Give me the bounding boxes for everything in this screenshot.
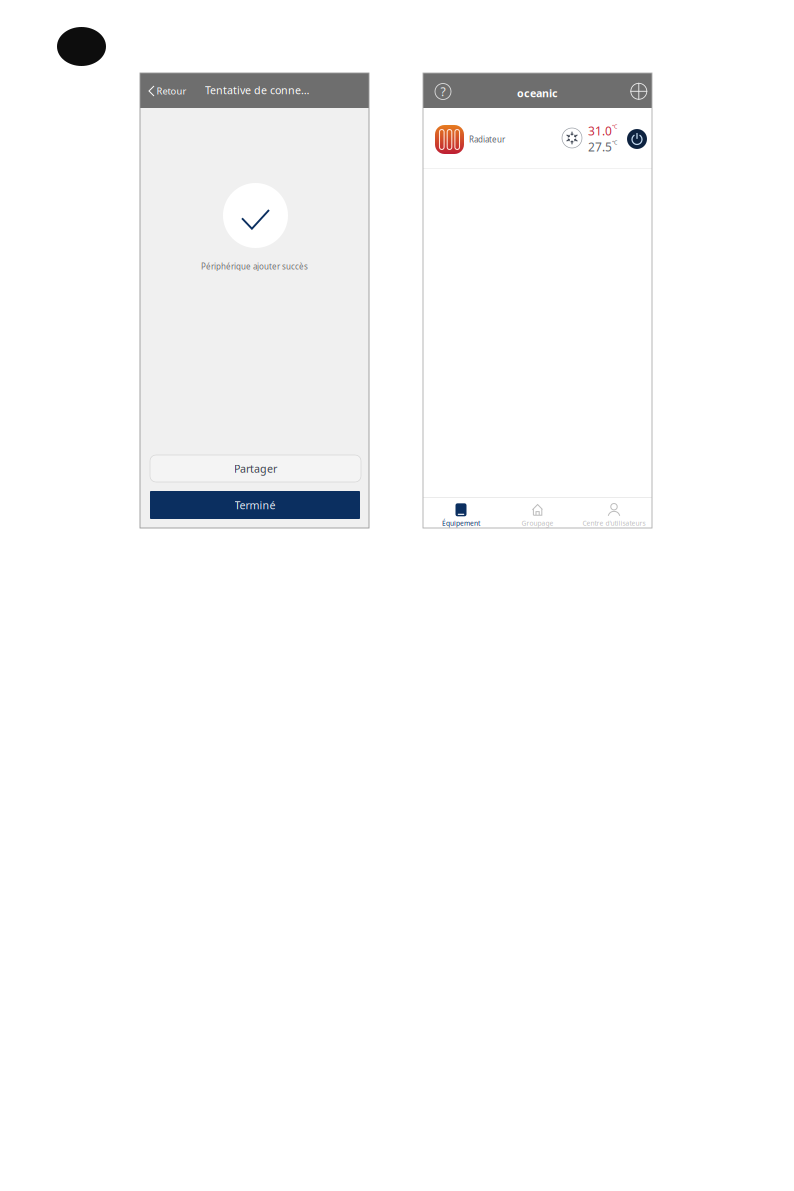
button[interactable]: Équipement [423, 500, 499, 531]
staticText: Partager [234, 461, 277, 476]
staticText: Radiateur [469, 134, 505, 145]
button[interactable]: Retour [145, 78, 190, 104]
button[interactable]: Radiateur [423, 108, 652, 168]
button[interactable]: Groupage [499, 500, 576, 531]
button[interactable]: Ajouter [627, 79, 651, 103]
staticText: ? [440, 83, 445, 99]
button[interactable]: Aide [431, 79, 455, 103]
staticText: 27.5 [588, 139, 612, 155]
staticText: Tentative de conne… [205, 83, 309, 97]
staticText: oceanic [517, 86, 558, 100]
button[interactable]: Partager [150, 455, 361, 482]
staticText: Retour [156, 85, 186, 97]
staticText: Groupage [521, 519, 553, 528]
staticText: °C [612, 123, 617, 130]
staticText: Périphérique ajouter succès [201, 261, 308, 272]
button[interactable]: Terminé [150, 491, 360, 519]
button[interactable]: Centre d'utilisateurs [576, 500, 652, 531]
staticText: Terminé [234, 498, 275, 512]
staticText: °C [612, 139, 617, 146]
staticText: 31.0 [588, 123, 612, 139]
staticText: Équipement [442, 519, 480, 528]
staticText: Centre d'utilisateurs [582, 519, 645, 528]
